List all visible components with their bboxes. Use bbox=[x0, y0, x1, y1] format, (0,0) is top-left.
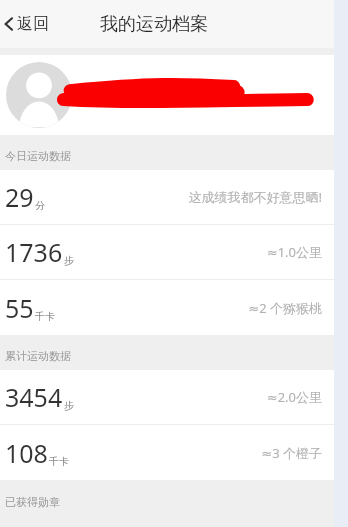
staticText: 今日运动数据 bbox=[5, 149, 71, 163]
staticText: 返回 bbox=[17, 14, 49, 34]
staticText: 步 bbox=[64, 254, 74, 267]
staticText: 29 bbox=[5, 180, 34, 214]
staticText: 108 bbox=[5, 436, 48, 470]
staticText: 1736 bbox=[5, 235, 63, 269]
staticText: 累计运动数据 bbox=[5, 349, 71, 363]
button[interactable]: 1736 bbox=[0, 225, 334, 279]
button[interactable] bbox=[0, 55, 334, 135]
staticText: 分 bbox=[35, 199, 45, 212]
button[interactable]: 55 bbox=[0, 280, 334, 335]
staticText: 千卡 bbox=[49, 455, 69, 468]
staticText: 已获得勋章 bbox=[5, 495, 60, 509]
staticText: ≈2.0公里 bbox=[266, 388, 322, 406]
staticText: 3454 bbox=[5, 380, 63, 414]
button[interactable]: 29 bbox=[0, 170, 334, 224]
staticText: 千卡 bbox=[35, 310, 55, 323]
staticText: 这成绩我都不好意思晒! bbox=[188, 188, 322, 206]
button[interactable]: 返回 bbox=[0, 10, 57, 38]
staticText: ≈2 个猕猴桃 bbox=[248, 299, 322, 317]
staticText: ≈3 个橙子 bbox=[261, 444, 322, 462]
button[interactable]: 108 bbox=[0, 425, 334, 480]
staticText: 55 bbox=[5, 291, 34, 325]
staticText: ≈1.0公里 bbox=[266, 243, 322, 261]
staticText: 步 bbox=[64, 399, 74, 412]
staticText: 我的运动档案 bbox=[100, 13, 208, 36]
button[interactable]: 3454 bbox=[0, 370, 334, 424]
